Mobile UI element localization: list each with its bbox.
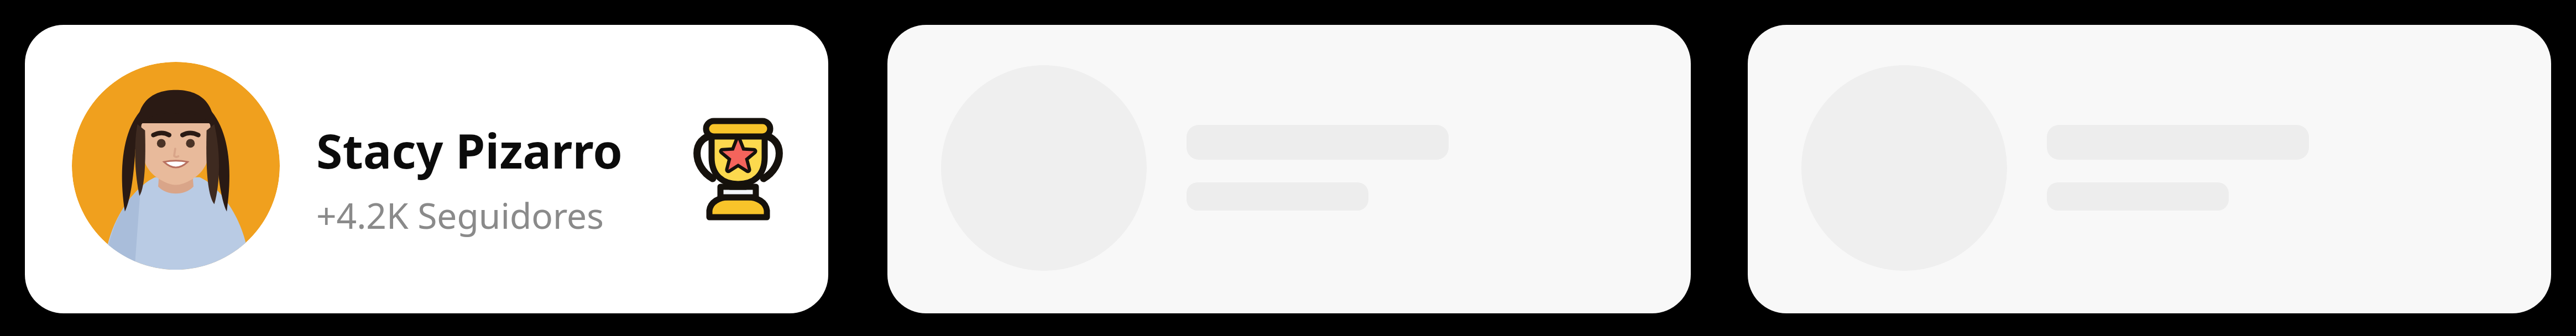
button[interactable]: Stacy Pizarro	[25, 25, 828, 313]
button[interactable]	[1748, 25, 2551, 313]
button[interactable]	[887, 25, 1691, 313]
staticText: +4.2K Seguidores	[316, 191, 604, 239]
staticText: Stacy Pizarro	[316, 118, 623, 182]
button[interactable]: Trophy award	[688, 113, 788, 224]
